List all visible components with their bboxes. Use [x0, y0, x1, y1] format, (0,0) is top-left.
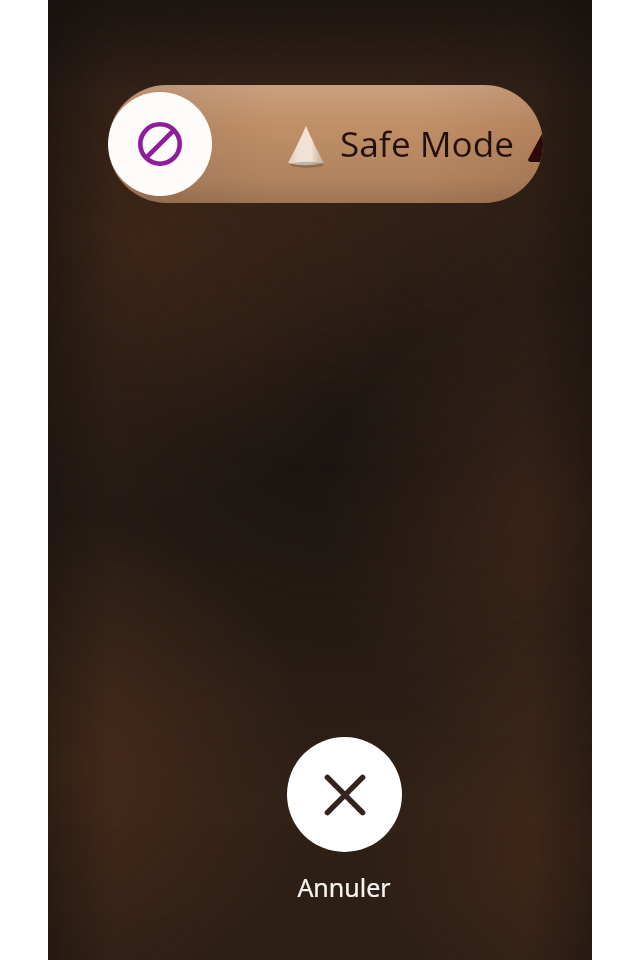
button[interactable]: Safe Mode toggle off — [108, 85, 543, 203]
button[interactable]: Annuler — [287, 737, 402, 852]
staticText: Annuler — [297, 870, 391, 904]
staticText: Safe Mode — [340, 120, 514, 168]
button[interactable]: Safe Mode toggle off — [108, 92, 212, 196]
